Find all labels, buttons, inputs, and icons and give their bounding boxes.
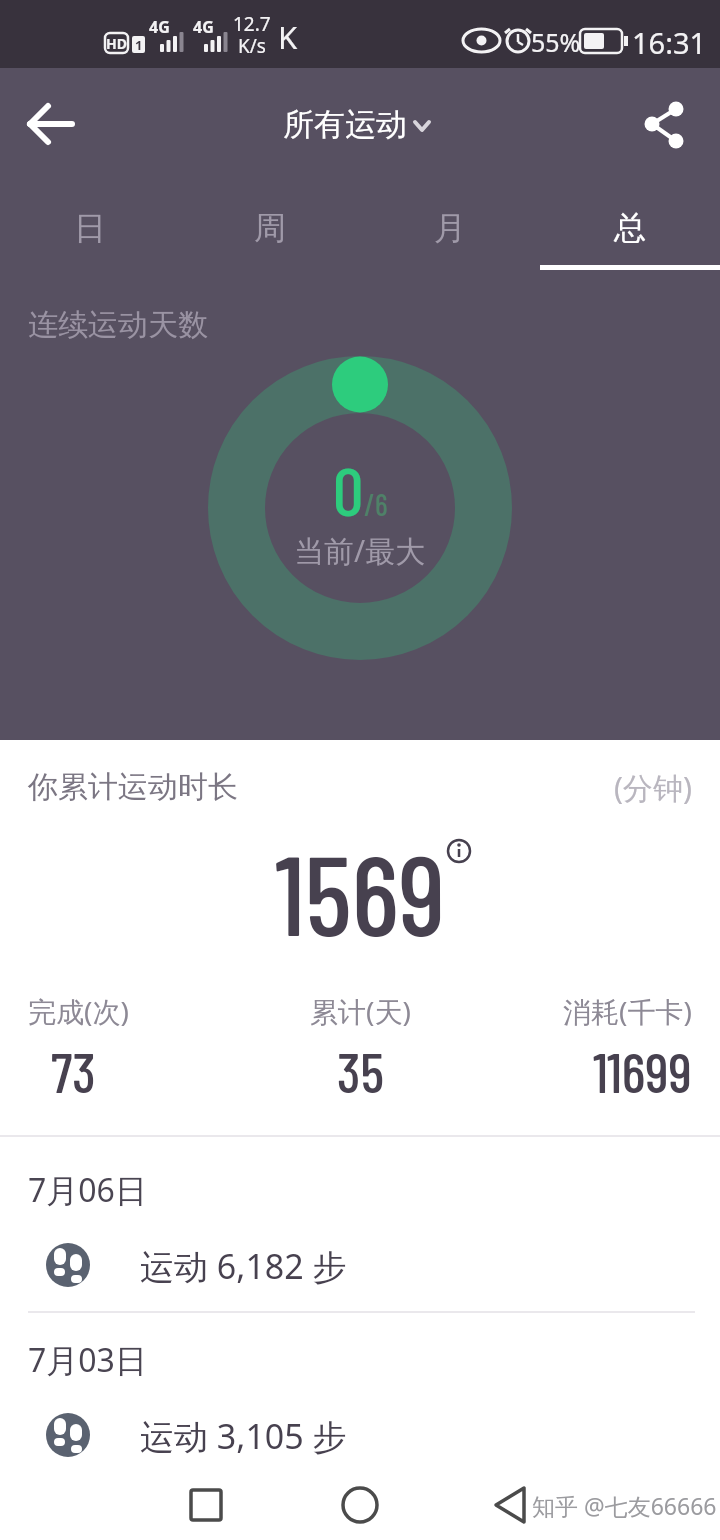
- staticText: 73: [51, 1037, 96, 1097]
- staticText: 7月03日: [28, 1338, 147, 1382]
- button[interactable]: [638, 96, 698, 152]
- staticText: 35: [337, 1037, 384, 1097]
- staticText: 消耗(千卡): [563, 992, 692, 1028]
- button[interactable]: [482, 1470, 542, 1540]
- staticText: 周: [254, 208, 286, 248]
- button[interactable]: 日: [0, 185, 180, 270]
- staticText: 连续运动天数: [28, 306, 208, 344]
- button[interactable]: [330, 1470, 390, 1540]
- staticText: 月: [434, 208, 466, 248]
- staticText: 7月06日: [28, 1168, 147, 1212]
- button[interactable]: 总: [540, 185, 720, 270]
- staticText: 累计(天): [310, 992, 411, 1028]
- button[interactable]: 运动 6,182 步: [0, 1230, 720, 1300]
- button[interactable]: 运动 3,105 步: [0, 1400, 720, 1470]
- staticText: 完成(次): [28, 992, 129, 1028]
- staticText: 55%: [531, 25, 581, 57]
- staticText: 11699: [593, 1037, 692, 1097]
- button[interactable]: 所有运动: [260, 96, 460, 152]
- staticText: 1569: [275, 824, 446, 938]
- staticText: 运动 3,105 步: [140, 1413, 347, 1457]
- staticText: 0: [333, 448, 364, 528]
- staticText: K: [278, 16, 298, 54]
- staticText: 知乎 @七友66666: [532, 1490, 717, 1521]
- staticText: /6: [364, 486, 388, 522]
- staticText: 总: [614, 208, 646, 248]
- button[interactable]: 周: [180, 185, 360, 270]
- staticText: 16:31: [632, 23, 707, 57]
- staticText: 1: [135, 36, 143, 53]
- staticText: 12.7: [233, 11, 271, 35]
- staticText: K/s: [238, 33, 266, 57]
- staticText: 日: [74, 208, 106, 248]
- staticText: 当前/最大: [294, 530, 426, 566]
- button[interactable]: 1569: [0, 824, 720, 938]
- staticText: 4G: [193, 16, 214, 36]
- staticText: 你累计运动时长: [28, 768, 238, 806]
- staticText: 所有运动: [283, 105, 407, 144]
- button[interactable]: [16, 96, 86, 152]
- staticText: 4G: [149, 16, 170, 36]
- staticText: (分钟): [614, 767, 692, 807]
- staticText: HD: [106, 34, 127, 53]
- button[interactable]: 月: [360, 185, 540, 270]
- staticText: 运动 6,182 步: [140, 1243, 347, 1287]
- button[interactable]: [176, 1470, 236, 1540]
